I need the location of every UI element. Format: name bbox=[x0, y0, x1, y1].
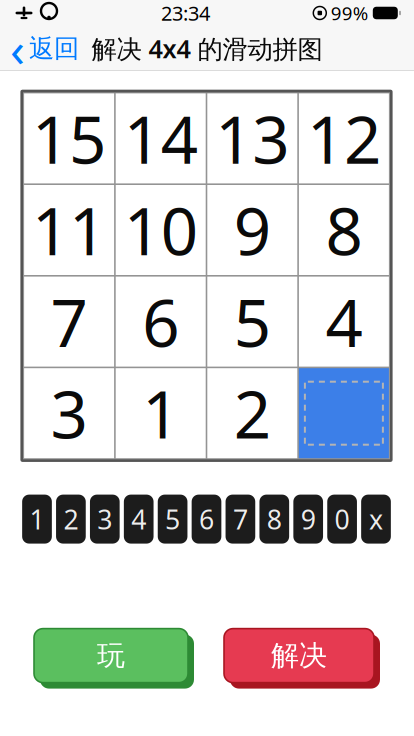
staticText: 15 bbox=[32, 95, 106, 182]
staticText: 7 bbox=[233, 501, 248, 537]
staticText: 3 bbox=[97, 501, 112, 537]
button[interactable]: 15 bbox=[24, 93, 114, 183]
staticText: 6 bbox=[199, 501, 214, 537]
button[interactable]: 4 bbox=[299, 277, 389, 367]
button[interactable]: 9 bbox=[207, 185, 297, 275]
button[interactable]: 1 bbox=[22, 495, 52, 544]
staticText: 5 bbox=[165, 501, 180, 537]
staticText: 8 bbox=[267, 501, 282, 537]
button[interactable]: 3 bbox=[90, 495, 120, 544]
button[interactable]: 6 bbox=[192, 495, 221, 544]
staticText: 2 bbox=[234, 370, 271, 457]
staticText: 13 bbox=[215, 95, 289, 182]
staticText: 9 bbox=[234, 187, 271, 273]
button[interactable]: Empty tile bbox=[299, 368, 389, 458]
button[interactable]: 1 bbox=[116, 368, 206, 458]
staticText: 4 bbox=[325, 278, 362, 365]
staticText: 解决 bbox=[271, 638, 327, 673]
button[interactable]: 4 bbox=[124, 495, 154, 544]
staticText: 0 bbox=[335, 501, 350, 537]
button[interactable]: 解决 bbox=[224, 629, 380, 689]
button[interactable]: 12 bbox=[299, 93, 389, 183]
button[interactable]: 玩 bbox=[34, 629, 194, 689]
button[interactable]: ‹ bbox=[0, 26, 87, 71]
button[interactable]: 8 bbox=[259, 495, 289, 544]
button[interactable]: 0 bbox=[327, 495, 357, 544]
staticText: 玩 bbox=[97, 638, 125, 673]
staticText: 返回 bbox=[29, 33, 79, 64]
button[interactable]: 5 bbox=[207, 277, 297, 367]
button[interactable]: 2 bbox=[56, 495, 86, 544]
staticText: 6 bbox=[142, 278, 179, 365]
staticText: 9 bbox=[301, 501, 316, 537]
staticText: 7 bbox=[51, 278, 88, 365]
staticText: 8 bbox=[325, 187, 362, 273]
staticText: 10 bbox=[124, 187, 198, 273]
staticText: 11 bbox=[32, 187, 106, 273]
button[interactable]: 6 bbox=[116, 277, 206, 367]
staticText: 4 bbox=[131, 501, 146, 537]
button[interactable]: x bbox=[361, 495, 391, 544]
button[interactable]: 5 bbox=[158, 495, 187, 544]
button[interactable]: 2 bbox=[207, 368, 297, 458]
button[interactable]: 8 bbox=[299, 185, 389, 275]
staticText: 99% bbox=[331, 1, 369, 25]
button[interactable]: 13 bbox=[207, 93, 297, 183]
staticText: 12 bbox=[307, 95, 381, 182]
button[interactable]: 10 bbox=[116, 185, 206, 275]
button[interactable]: 7 bbox=[226, 495, 255, 544]
staticText: 3 bbox=[51, 370, 88, 457]
staticText: 14 bbox=[124, 95, 198, 182]
button[interactable]: 14 bbox=[116, 93, 206, 183]
staticText: x bbox=[369, 501, 383, 537]
button[interactable]: 3 bbox=[24, 368, 114, 458]
staticText: 5 bbox=[234, 278, 271, 365]
staticText: 1 bbox=[29, 501, 44, 537]
staticText: ‹ bbox=[10, 17, 25, 80]
staticText: 23:34 bbox=[161, 0, 210, 26]
staticText: 解决 4x4 的滑动拼图 bbox=[91, 32, 322, 65]
staticText: 1 bbox=[142, 370, 179, 457]
button[interactable]: 9 bbox=[293, 495, 323, 544]
button[interactable]: 11 bbox=[24, 185, 114, 275]
staticText: 2 bbox=[63, 501, 78, 537]
button[interactable]: 7 bbox=[24, 277, 114, 367]
